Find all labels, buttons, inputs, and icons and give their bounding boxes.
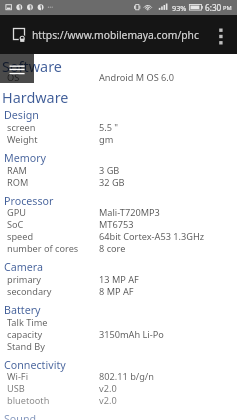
staticText: Software bbox=[2, 57, 62, 77]
staticText: Battery bbox=[4, 303, 41, 318]
staticText: 3150mAh Li-Po bbox=[99, 328, 164, 341]
staticText: Connectivity bbox=[4, 358, 66, 373]
staticText: Sound bbox=[4, 412, 37, 420]
staticText: USB bbox=[7, 382, 25, 395]
staticText: 13 MP AF bbox=[99, 273, 139, 286]
staticText: ROM bbox=[7, 176, 29, 189]
staticText: v2.0 bbox=[99, 394, 117, 407]
staticText: RAM bbox=[7, 164, 27, 177]
staticText: secondary bbox=[7, 285, 52, 298]
staticText: 8 MP AF bbox=[99, 285, 134, 298]
staticText: Hardware bbox=[2, 88, 69, 108]
staticText: 802.11 b/g/n bbox=[99, 370, 154, 383]
staticText: gm bbox=[99, 133, 114, 146]
staticText: OS bbox=[7, 71, 20, 84]
staticText: Design bbox=[4, 108, 39, 123]
staticText: 5.5 " bbox=[99, 121, 119, 134]
staticText: Processor bbox=[4, 194, 54, 209]
staticText: 8 core bbox=[99, 242, 126, 255]
staticText: Weight bbox=[7, 133, 38, 146]
button[interactable]: More options bbox=[213, 15, 237, 54]
staticText: 3 GB bbox=[99, 164, 120, 177]
button[interactable]: Menu bbox=[0, 54, 34, 83]
staticText: MT6753 bbox=[99, 218, 134, 231]
staticText: 93% bbox=[172, 3, 187, 13]
staticText: Wi-Fi bbox=[7, 370, 29, 383]
staticText: speed bbox=[7, 230, 34, 243]
staticText: bluetooth bbox=[7, 394, 50, 407]
staticText: Memory bbox=[4, 151, 47, 166]
staticText: 32 GB bbox=[99, 176, 125, 189]
staticText: v2.0 bbox=[99, 382, 117, 395]
staticText: 6:30 bbox=[205, 2, 222, 13]
staticText: capacity bbox=[7, 328, 43, 341]
staticText: SoC bbox=[7, 218, 24, 231]
staticText: 64bit Cortex-A53 1.3GHz bbox=[99, 230, 205, 243]
staticText: PM bbox=[223, 4, 232, 12]
staticText: number of cores bbox=[7, 242, 79, 255]
staticText: Stand By bbox=[7, 340, 45, 353]
staticText: Camera bbox=[4, 260, 43, 275]
staticText: https://www.mobilemaya.com/phc bbox=[32, 28, 199, 42]
staticText: Talk Time bbox=[7, 316, 48, 329]
staticText: Mali-T720MP3 bbox=[99, 206, 160, 219]
staticText: Android M OS 6.0 bbox=[99, 71, 175, 84]
staticText: GPU bbox=[7, 206, 26, 219]
staticText: primary bbox=[7, 273, 42, 286]
staticText: screen bbox=[7, 121, 36, 134]
